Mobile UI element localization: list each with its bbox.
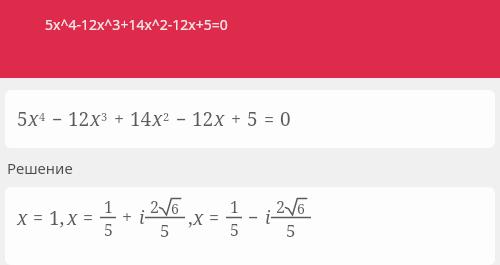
- button[interactable]: x: [5, 187, 495, 265]
- staticText: 1: [230, 196, 239, 216]
- staticText: 5: [160, 219, 170, 239]
- staticText: 5: [104, 219, 113, 239]
- staticText: +: [231, 107, 242, 132]
- staticText: 12: [68, 106, 90, 132]
- staticText: 3: [101, 109, 108, 124]
- staticText: =: [33, 205, 44, 230]
- staticText: x: [90, 106, 101, 132]
- staticText: ,: [188, 205, 193, 231]
- staticText: =: [264, 107, 275, 132]
- staticText: +: [114, 107, 125, 132]
- staticText: 4: [39, 109, 46, 124]
- staticText: 6: [171, 199, 179, 216]
- staticText: Решение: [7, 158, 73, 178]
- staticText: 5: [247, 106, 258, 132]
- staticText: i: [139, 205, 145, 230]
- staticText: x: [152, 106, 163, 132]
- staticText: =: [83, 205, 94, 230]
- staticText: 6: [297, 199, 305, 216]
- staticText: 5: [230, 219, 239, 239]
- staticText: x: [28, 106, 39, 132]
- button[interactable]: 5x^4-12x^3+14x^2-12x+5=0: [0, 0, 500, 78]
- staticText: 2: [276, 196, 285, 216]
- button[interactable]: 5: [5, 90, 495, 148]
- staticText: =: [209, 205, 220, 230]
- staticText: x: [193, 205, 204, 231]
- staticText: 14: [130, 106, 152, 132]
- staticText: 5: [17, 106, 28, 132]
- staticText: −: [176, 107, 187, 132]
- staticText: −: [52, 107, 63, 132]
- staticText: −: [248, 205, 259, 230]
- staticText: 1,: [49, 205, 65, 231]
- staticText: x: [67, 205, 78, 231]
- staticText: 12: [192, 106, 214, 132]
- staticText: +: [122, 205, 133, 230]
- staticText: 5x^4-12x^3+14x^2-12x+5=0: [45, 15, 228, 34]
- staticText: 5: [286, 219, 296, 239]
- staticText: 2: [150, 196, 159, 216]
- staticText: i: [265, 205, 271, 230]
- staticText: 2: [163, 109, 170, 124]
- staticText: x: [17, 205, 28, 231]
- staticText: 1: [104, 196, 113, 216]
- staticText: 0: [280, 106, 291, 132]
- staticText: x: [214, 106, 225, 132]
